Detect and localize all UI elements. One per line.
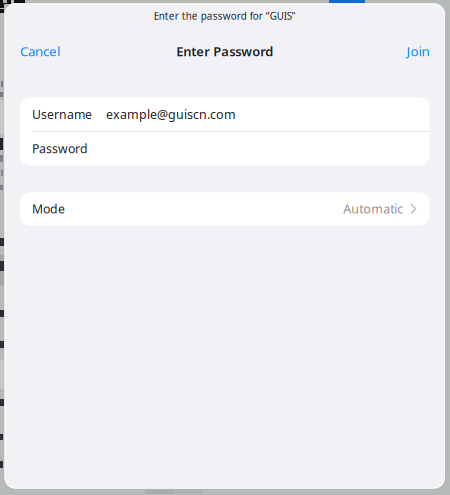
- staticText: Automatic: [343, 201, 403, 217]
- staticText: Password: [32, 140, 88, 157]
- button[interactable]: Cancel: [20, 42, 60, 60]
- staticText: Join: [406, 42, 429, 60]
- staticText: example@guiscn.com: [106, 106, 236, 122]
- staticText: Enter Password: [176, 43, 273, 60]
- staticText: Username: [32, 106, 92, 122]
- staticText: Mode: [32, 201, 65, 217]
- staticText: Enter the password for “GUIS”: [154, 9, 296, 22]
- staticText: Cancel: [20, 42, 60, 60]
- button[interactable]: Mode: [20, 192, 429, 225]
- button[interactable]: Join: [406, 42, 429, 60]
